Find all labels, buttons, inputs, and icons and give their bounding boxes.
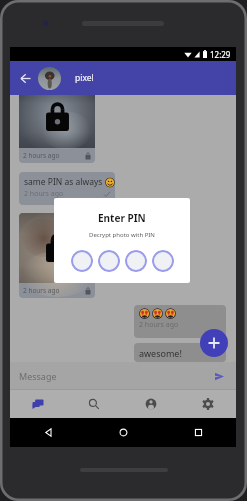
- button[interactable]: Settings: [179, 390, 236, 418]
- staticText: 12:29: [210, 49, 231, 60]
- button[interactable]: PIN digit: [71, 250, 93, 272]
- button[interactable]: Account: [122, 390, 179, 418]
- button[interactable]: PIN digit: [125, 250, 147, 272]
- button[interactable]: Encrypted photo: [19, 213, 95, 298]
- button[interactable]: Recents: [161, 418, 236, 447]
- staticText: 2 hours ago: [23, 151, 60, 160]
- staticText: Message: [19, 370, 57, 382]
- staticText: 2 hours ago: [139, 320, 179, 330]
- staticText: pixel: [75, 72, 94, 84]
- button[interactable]: Search: [66, 390, 122, 418]
- button[interactable]: New message: [200, 329, 228, 357]
- button[interactable]: same PIN as always: [19, 172, 115, 205]
- button[interactable]: Back: [14, 67, 36, 89]
- button[interactable]: Chats: [10, 390, 66, 418]
- staticText: Enter PIN: [98, 211, 146, 225]
- button[interactable]: awesome!: [134, 343, 226, 362]
- staticText: awesome!: [139, 347, 182, 359]
- staticText: 2 hours ago: [23, 286, 60, 295]
- button[interactable]: Send: [208, 365, 230, 387]
- staticText: Decrypt photo with PIN: [89, 231, 155, 239]
- staticText: 2 hours ago: [24, 189, 64, 199]
- button[interactable]: Encrypted photo: [19, 85, 95, 163]
- button[interactable]: 2 hours ago: [134, 305, 226, 338]
- button[interactable]: PIN digit: [98, 250, 120, 272]
- button[interactable]: PIN digit: [152, 250, 174, 272]
- button[interactable]: Back: [10, 418, 86, 447]
- staticText: same PIN as always: [24, 176, 103, 188]
- button[interactable]: Home: [86, 418, 161, 447]
- button[interactable]: Contact avatar: [38, 67, 61, 90]
